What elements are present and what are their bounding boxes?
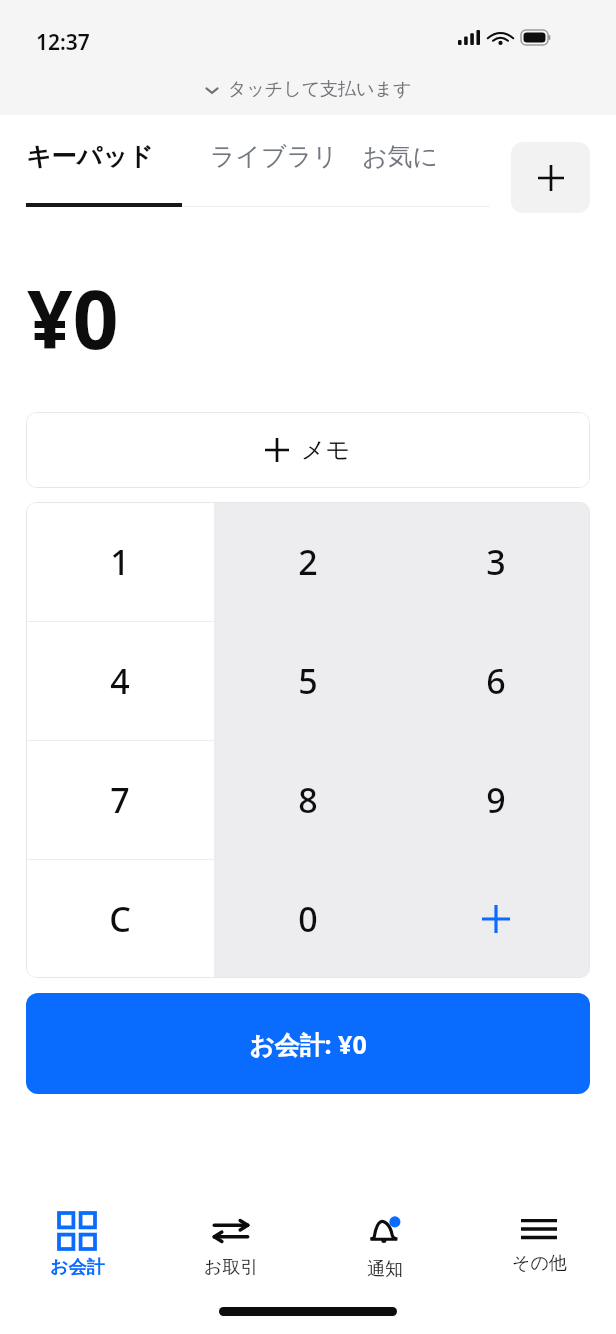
button[interactable]: 6 xyxy=(402,622,590,740)
staticText: ¥0 xyxy=(27,263,119,367)
button[interactable]: メモ xyxy=(26,412,590,488)
button[interactable]: お取引 xyxy=(154,1200,308,1300)
staticText: キーパッド xyxy=(26,141,154,172)
button[interactable]: その他 xyxy=(462,1200,616,1300)
button[interactable]: お気に xyxy=(362,141,439,172)
staticText: お取引 xyxy=(204,1256,259,1279)
staticText: 8 xyxy=(298,777,318,823)
staticText: 5 xyxy=(298,658,318,704)
other: Add item xyxy=(482,905,510,933)
staticText: お気に xyxy=(362,141,439,172)
staticText: メモ xyxy=(301,435,351,465)
staticText: ライブラリ xyxy=(210,141,338,172)
button[interactable]: 4 xyxy=(26,622,214,740)
staticText: お会計: ¥0 xyxy=(249,1027,367,1061)
staticText: 2 xyxy=(298,539,318,585)
staticText: 0 xyxy=(298,896,318,942)
staticText: 通知 xyxy=(367,1258,403,1281)
button[interactable]: 1 xyxy=(26,502,214,621)
staticText: 6 xyxy=(486,658,506,704)
button[interactable]: 7 xyxy=(26,741,214,859)
button[interactable]: お会計: ¥0 xyxy=(26,993,590,1094)
staticText: タッチして支払います xyxy=(228,78,412,101)
staticText: お会計 xyxy=(50,1256,105,1279)
button[interactable]: キーパッド xyxy=(26,141,184,207)
staticText: 9 xyxy=(486,777,506,823)
staticText: 3 xyxy=(486,539,506,585)
button[interactable]: 通知 xyxy=(308,1200,462,1300)
button[interactable]: Add item xyxy=(402,860,590,978)
button[interactable]: 8 xyxy=(214,741,402,859)
button[interactable]: ライブラリ xyxy=(210,141,338,172)
button[interactable]: 3 xyxy=(402,502,590,621)
staticText: その他 xyxy=(512,1252,567,1275)
staticText: 12:37 xyxy=(36,28,90,57)
button[interactable]: C xyxy=(26,860,214,978)
staticText: 7 xyxy=(110,777,130,823)
staticText: 1 xyxy=(110,539,130,585)
button[interactable]: 0 xyxy=(214,860,402,978)
staticText: C xyxy=(109,896,131,942)
staticText: 4 xyxy=(110,658,130,704)
button[interactable]: お会計 xyxy=(0,1200,154,1300)
button[interactable]: Add xyxy=(511,142,590,213)
button[interactable]: 9 xyxy=(402,741,590,859)
button[interactable]: 5 xyxy=(214,622,402,740)
button[interactable]: 2 xyxy=(214,502,402,621)
